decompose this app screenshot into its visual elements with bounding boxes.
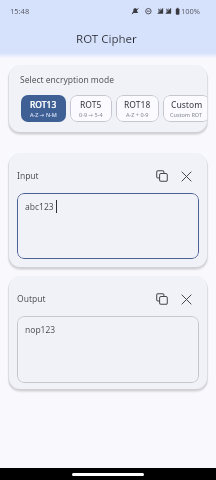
button[interactable]: nop123 [17, 316, 199, 383]
staticText: A-Z → N-M [30, 111, 57, 118]
button[interactable]: ROT5 [70, 95, 112, 122]
button[interactable]: abc123 [17, 193, 199, 259]
staticText: Select encryption mode [20, 74, 114, 86]
button[interactable]: Copy Output [152, 289, 172, 309]
staticText: ROT5 [80, 99, 102, 111]
button[interactable]: Custom [163, 95, 207, 122]
staticText: Custom ROT [170, 111, 203, 118]
staticText: Custom [171, 99, 203, 111]
staticText: A-Z + 0-9 [126, 111, 149, 118]
staticText: Input [17, 170, 39, 182]
button[interactable]: ROT18 [116, 95, 159, 122]
staticText: 100% [181, 6, 201, 16]
staticText: nop123 [25, 324, 56, 336]
staticText: ROT18 [124, 99, 151, 111]
button[interactable]: Copy Input [152, 166, 172, 186]
button[interactable]: Clear Input [176, 166, 196, 186]
staticText: 0-9 → 5-4 [79, 111, 103, 118]
staticText: 15:48 [10, 6, 30, 16]
button[interactable]: ROT13 [21, 95, 66, 122]
staticText: ROT13 [30, 99, 57, 111]
button[interactable]: Clear Output [176, 289, 196, 309]
staticText: Output [17, 293, 46, 305]
staticText: abc123 [25, 201, 54, 213]
staticText: ROT Cipher [76, 31, 137, 47]
